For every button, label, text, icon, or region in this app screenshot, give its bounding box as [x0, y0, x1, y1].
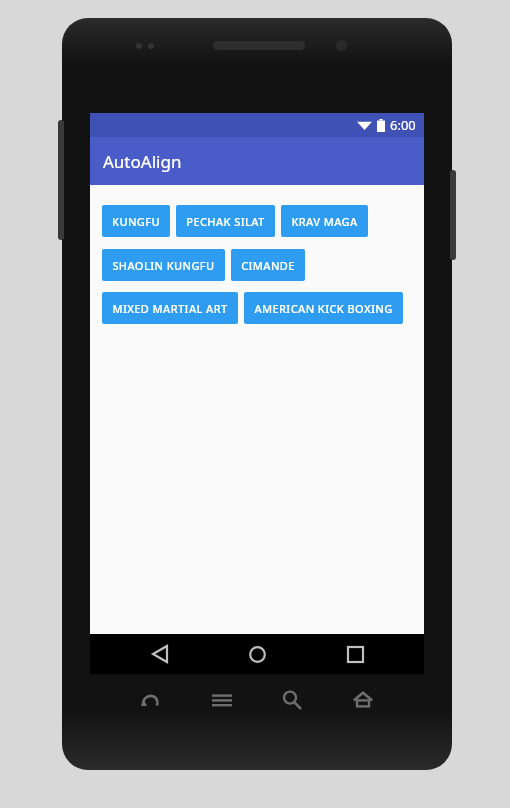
button[interactable]: SHAOLIN KUNGFU	[102, 249, 225, 281]
staticText: KUNGFU	[112, 214, 160, 229]
button[interactable]: Home	[229, 634, 285, 674]
button[interactable]: CIMANDE	[231, 249, 305, 281]
button[interactable]: AMERICAN KICK BOXING	[244, 292, 403, 324]
staticText: MIXED MARTIAL ART	[112, 301, 228, 316]
staticText: CIMANDE	[241, 258, 295, 273]
staticText: KRAV MAGA	[291, 214, 358, 229]
staticText: AMERICAN KICK BOXING	[254, 301, 393, 316]
staticText: 6:00	[390, 116, 416, 134]
staticText: PECHAK SILAT	[186, 214, 265, 229]
button[interactable]: Back	[132, 634, 188, 674]
button[interactable]: KUNGFU	[102, 205, 170, 237]
button[interactable]: MIXED MARTIAL ART	[102, 292, 238, 324]
staticText: SHAOLIN KUNGFU	[112, 258, 215, 273]
button[interactable]: Recent apps	[327, 634, 383, 674]
button[interactable]: KRAV MAGA	[281, 205, 368, 237]
button[interactable]: PECHAK SILAT	[176, 205, 275, 237]
staticText: AutoAlign	[103, 150, 182, 173]
